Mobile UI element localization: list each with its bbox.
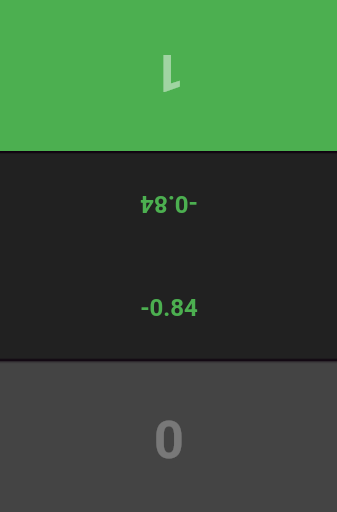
button[interactable]: Your score 0, tap to add a point [0,361,337,512]
staticText: -0.84 [140,294,198,322]
button[interactable]: Your total -0.84 [0,256,337,361]
staticText: 1 [154,42,184,103]
button[interactable]: Opponent score 1, tap to add a point [0,0,337,151]
staticText: 0 [154,410,184,471]
staticText: -0.84 [140,190,198,218]
button[interactable]: Opponent total -0.84 [0,151,337,256]
